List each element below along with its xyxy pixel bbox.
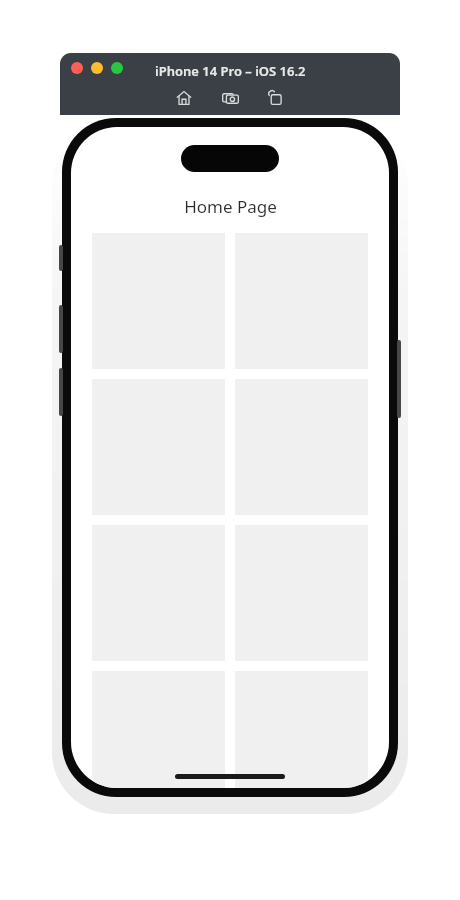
button[interactable]: Zoom [111, 62, 123, 74]
button[interactable]: Record [264, 86, 288, 110]
button[interactable]: Home [172, 86, 196, 110]
button[interactable]: Close [71, 62, 83, 74]
button[interactable] [92, 671, 225, 788]
staticText: iPhone 14 Pro – iOS 16.2 [155, 62, 306, 80]
staticText: Home Page [184, 195, 277, 218]
button[interactable]: Silent switch [59, 245, 63, 271]
button[interactable]: Screenshot [218, 86, 242, 110]
button[interactable] [235, 671, 368, 788]
button[interactable]: Volume up [59, 305, 63, 353]
button[interactable]: Power [397, 340, 401, 418]
button[interactable]: Volume down [59, 368, 63, 416]
button[interactable]: Minimize [91, 62, 103, 74]
